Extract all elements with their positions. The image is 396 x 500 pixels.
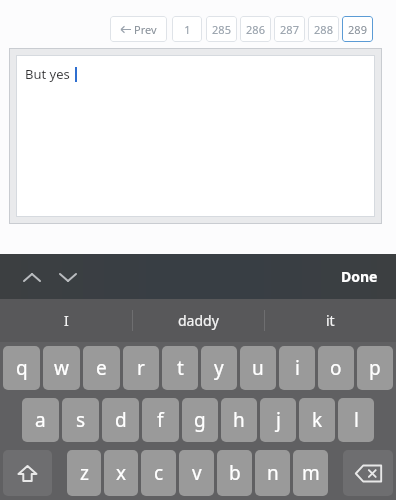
button[interactable]: l — [338, 398, 374, 442]
button[interactable]: g — [182, 398, 218, 442]
button[interactable]: o — [318, 346, 354, 390]
button[interactable]: i — [279, 346, 315, 390]
staticText: b — [229, 460, 241, 486]
button[interactable]: n — [255, 450, 290, 496]
button[interactable]: I — [0, 299, 132, 342]
staticText: p — [369, 355, 381, 381]
staticText: v — [192, 460, 202, 486]
button[interactable]: q — [3, 346, 40, 390]
button[interactable]: h — [221, 398, 257, 442]
staticText: 285 — [212, 22, 231, 37]
staticText: q — [16, 355, 28, 381]
button[interactable]: Next field — [54, 263, 82, 291]
button[interactable]: m — [293, 450, 328, 496]
button[interactable]: 289 — [342, 16, 373, 42]
staticText: Done — [341, 267, 378, 286]
staticText: d — [115, 407, 127, 433]
button[interactable]: d — [102, 398, 139, 442]
button[interactable]: j — [260, 398, 296, 442]
button[interactable]: k — [299, 398, 335, 442]
staticText: a — [35, 407, 46, 433]
staticText: 288 — [314, 22, 333, 37]
staticText: z — [80, 460, 89, 486]
staticText: l — [354, 407, 359, 433]
button[interactable]: w — [43, 346, 80, 390]
button[interactable]: 288 — [308, 16, 339, 42]
staticText: c — [154, 460, 164, 486]
staticText: 286 — [246, 22, 265, 37]
button[interactable]: But yes — [16, 55, 375, 217]
staticText: h — [233, 407, 245, 433]
staticText: x — [116, 460, 127, 486]
staticText: Prev — [134, 22, 157, 37]
staticText: e — [96, 355, 107, 381]
staticText: 287 — [280, 22, 299, 37]
button[interactable]: a — [22, 398, 59, 442]
staticText: s — [76, 407, 86, 433]
button[interactable]: e — [83, 346, 120, 390]
staticText: g — [194, 407, 206, 433]
staticText: j — [276, 407, 281, 433]
button[interactable]: 1 — [172, 16, 202, 42]
button[interactable]: it — [265, 299, 396, 342]
staticText: But yes — [25, 65, 70, 83]
button[interactable]: Shift — [3, 450, 52, 496]
staticText: f — [157, 407, 164, 433]
staticText: t — [177, 355, 184, 381]
button[interactable]: y — [201, 346, 237, 390]
button[interactable]: s — [62, 398, 99, 442]
button[interactable]: f — [142, 398, 179, 442]
staticText: u — [252, 355, 264, 381]
button[interactable]: Done — [337, 263, 382, 290]
button[interactable]: Prev — [110, 16, 167, 42]
staticText: y — [214, 355, 224, 381]
staticText: I — [64, 311, 69, 330]
staticText: m — [302, 460, 320, 486]
button[interactable]: 286 — [240, 16, 271, 42]
staticText: n — [267, 460, 279, 486]
button[interactable]: b — [217, 450, 252, 496]
staticText: k — [312, 407, 323, 433]
staticText: o — [330, 355, 342, 381]
staticText: 1 — [184, 22, 191, 37]
button[interactable]: 287 — [274, 16, 305, 42]
button[interactable]: r — [123, 346, 159, 390]
staticText: r — [137, 355, 145, 381]
button[interactable]: Previous field — [18, 263, 46, 291]
button[interactable]: daddy — [133, 299, 264, 342]
staticText: 289 — [348, 22, 367, 37]
button[interactable]: u — [240, 346, 276, 390]
staticText: daddy — [178, 311, 219, 330]
button[interactable]: c — [141, 450, 176, 496]
staticText: i — [295, 355, 300, 381]
button[interactable]: z — [67, 450, 101, 496]
button[interactable]: x — [104, 450, 138, 496]
button[interactable]: 285 — [206, 16, 237, 42]
button[interactable]: p — [357, 346, 393, 390]
button[interactable]: Backspace — [343, 450, 393, 496]
staticText: it — [326, 311, 335, 330]
staticText: w — [54, 355, 69, 381]
button[interactable]: t — [162, 346, 198, 390]
button[interactable]: v — [179, 450, 214, 496]
